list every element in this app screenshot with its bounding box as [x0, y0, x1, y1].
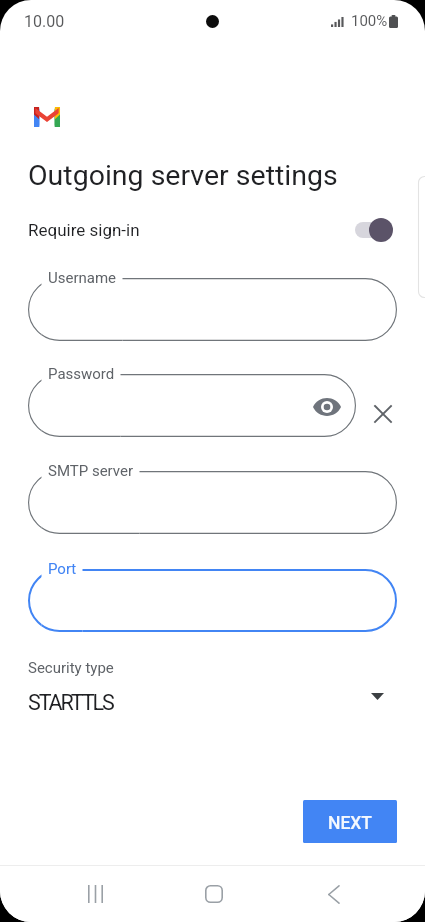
button[interactable]: Recent apps — [72, 875, 118, 913]
button[interactable]: Username — [28, 278, 397, 341]
staticText: Port — [48, 560, 77, 578]
button[interactable]: Require sign-in toggle — [355, 216, 397, 244]
button[interactable]: STARTTLS — [0, 685, 425, 721]
button[interactable]: Clear password — [364, 395, 401, 432]
staticText: STARTTLS — [28, 690, 113, 715]
button[interactable]: Show password — [309, 389, 345, 425]
button[interactable]: SMTP server — [28, 471, 397, 534]
staticText: 10.00 — [24, 12, 65, 31]
staticText: NEXT — [328, 813, 373, 834]
staticText: Outgoing server settings — [28, 159, 338, 192]
button[interactable]: Port — [28, 569, 397, 632]
button[interactable]: Back — [310, 875, 356, 913]
staticText: SMTP server — [48, 462, 134, 480]
staticText: 100% — [351, 12, 388, 30]
button[interactable]: NEXT — [303, 800, 397, 843]
staticText: Username — [48, 269, 117, 287]
button[interactable]: Password — [28, 374, 356, 437]
button[interactable]: Require sign-in — [0, 211, 425, 249]
staticText: Security type — [28, 659, 114, 677]
staticText: Password — [48, 365, 115, 383]
button[interactable]: Home — [191, 875, 237, 913]
staticText: Require sign-in — [28, 220, 140, 240]
